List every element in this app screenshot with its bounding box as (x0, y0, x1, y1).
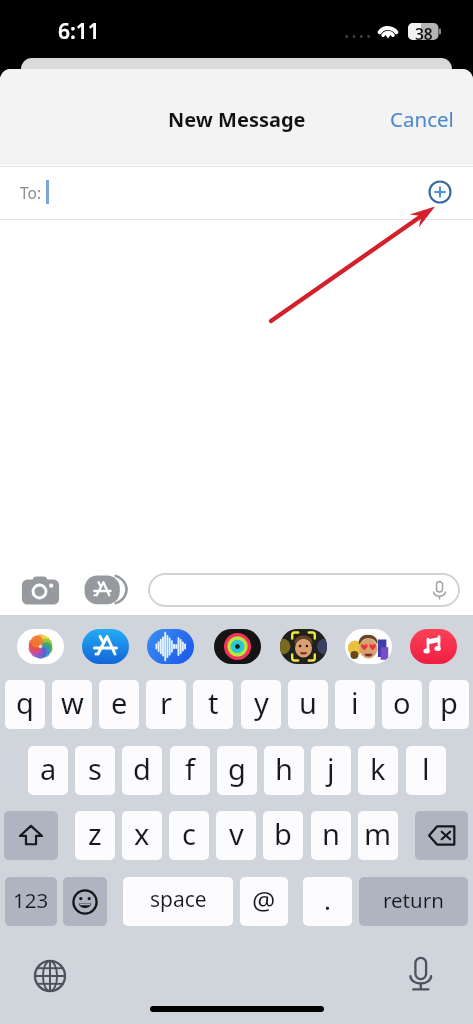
button[interactable]: return (359, 877, 468, 926)
button[interactable]: Audio (147, 629, 194, 664)
staticText: z (88, 814, 102, 853)
button[interactable]: f (170, 746, 210, 795)
button[interactable]: v (216, 811, 256, 860)
button[interactable]: m (358, 811, 398, 860)
staticText: o (393, 683, 411, 722)
staticText: Cancel (390, 105, 454, 133)
button[interactable]: t (193, 680, 233, 729)
button[interactable]: @ (240, 877, 288, 926)
staticText: i (351, 683, 359, 722)
button[interactable]: j (311, 746, 351, 795)
staticText: w (61, 683, 84, 722)
staticText: u (299, 683, 317, 722)
button[interactable]: e (99, 680, 139, 729)
button[interactable]: z (75, 811, 115, 860)
staticText: x (134, 814, 150, 853)
staticText: f (185, 749, 195, 788)
button[interactable]: Memoji (280, 629, 327, 664)
button[interactable]: App Store (82, 629, 129, 664)
staticText: e (111, 683, 128, 722)
staticText: New Message (168, 106, 306, 133)
button[interactable]: k (358, 746, 398, 795)
staticText: space (150, 885, 207, 914)
staticText: p (440, 683, 458, 722)
button[interactable]: Cancel (390, 105, 454, 133)
button[interactable]: . (303, 877, 352, 926)
button[interactable]: Dictate (410, 957, 433, 991)
staticText: To: (20, 182, 42, 203)
button[interactable]: Emoji (63, 877, 107, 926)
staticText: q (16, 683, 34, 722)
staticText: c (182, 814, 196, 853)
button[interactable]: n (311, 811, 351, 860)
staticText: s (88, 749, 102, 788)
button[interactable]: d (122, 746, 162, 795)
button[interactable]: r (146, 680, 186, 729)
button[interactable]: o (382, 680, 422, 729)
button[interactable]: space (123, 877, 233, 926)
staticText: d (133, 749, 151, 788)
button[interactable]: Camera (21, 575, 60, 605)
staticText: r (160, 683, 172, 722)
staticText: 38 (415, 23, 433, 40)
button[interactable]: Change keyboard (34, 960, 66, 992)
button[interactable]: x (122, 811, 162, 860)
button[interactable]: 123 (5, 877, 57, 926)
button[interactable]: y (241, 680, 281, 729)
button[interactable]: b (263, 811, 303, 860)
button[interactable] (148, 573, 460, 607)
staticText: t (208, 683, 219, 722)
staticText: return (383, 886, 444, 914)
button[interactable]: g (217, 746, 257, 795)
button[interactable]: q (5, 680, 45, 729)
button[interactable]: w (52, 680, 92, 729)
staticText: j (327, 749, 335, 788)
staticText: k (370, 749, 386, 788)
button[interactable]: c (169, 811, 209, 860)
button[interactable]: h (264, 746, 304, 795)
button[interactable]: Delete (415, 811, 468, 860)
button[interactable]: a (28, 746, 68, 795)
button[interactable]: Photos (17, 629, 64, 664)
staticText: a (40, 749, 57, 788)
staticText: y (254, 683, 269, 722)
button[interactable]: s (75, 746, 115, 795)
button[interactable]: i (335, 680, 375, 729)
staticText: v (229, 814, 244, 853)
button[interactable]: Fitness (214, 629, 261, 664)
staticText: g (228, 749, 246, 788)
staticText: m (364, 814, 392, 853)
button[interactable]: Shift (4, 811, 58, 860)
staticText: 123 (13, 886, 49, 914)
button[interactable]: Music (410, 629, 457, 664)
staticText: h (275, 749, 293, 788)
staticText: n (322, 814, 340, 853)
button[interactable]: u (288, 680, 328, 729)
button[interactable]: p (429, 680, 469, 729)
staticText: @ (252, 882, 276, 917)
staticText: . (324, 882, 331, 917)
button[interactable]: Apps (84, 575, 128, 605)
staticText: 6:11 (58, 17, 100, 46)
button[interactable]: l (406, 746, 446, 795)
button[interactable]: Add contact (427, 179, 453, 205)
staticText: l (422, 749, 430, 788)
button[interactable]: Memoji 2 (345, 629, 392, 664)
staticText: b (274, 814, 292, 853)
